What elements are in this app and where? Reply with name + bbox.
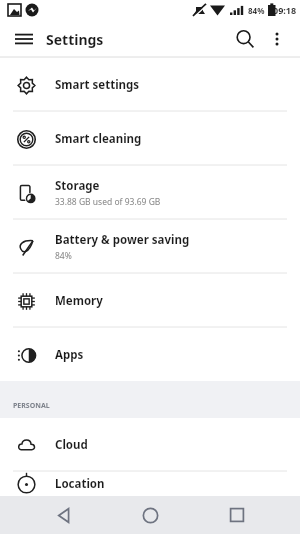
- button[interactable]: Cloud: [0, 418, 300, 471]
- button[interactable]: Apps: [0, 328, 300, 381]
- staticText: Smart cleaning: [55, 131, 142, 147]
- staticText: Memory: [55, 293, 103, 309]
- staticText: Smart settings: [55, 77, 140, 93]
- staticText: Apps: [55, 347, 84, 363]
- staticText: 09:18: [273, 4, 297, 16]
- button[interactable]: Battery & power saving: [0, 220, 300, 273]
- button[interactable]: Recent apps: [214, 496, 260, 534]
- staticText: Storage: [55, 178, 100, 194]
- button[interactable]: Home: [127, 496, 173, 534]
- button[interactable]: Storage: [0, 166, 300, 219]
- staticText: Cloud: [55, 437, 88, 453]
- staticText: 33.88 GB used of 93.69 GB: [55, 196, 161, 208]
- staticText: Settings: [46, 30, 104, 49]
- staticText: 84%: [55, 250, 72, 262]
- button[interactable]: Location: [0, 472, 300, 496]
- button[interactable]: Open navigation drawer: [8, 23, 40, 55]
- button[interactable]: Back: [41, 496, 87, 534]
- staticText: Location: [55, 476, 105, 492]
- button[interactable]: Smart settings: [0, 58, 300, 111]
- button[interactable]: Memory: [0, 274, 300, 327]
- button[interactable]: Search: [228, 22, 262, 56]
- button[interactable]: More options: [262, 24, 292, 54]
- staticText: 84%: [248, 5, 265, 16]
- staticText: PERSONAL: [13, 401, 50, 411]
- staticText: Battery & power saving: [55, 232, 190, 248]
- button[interactable]: Smart cleaning: [0, 112, 300, 165]
